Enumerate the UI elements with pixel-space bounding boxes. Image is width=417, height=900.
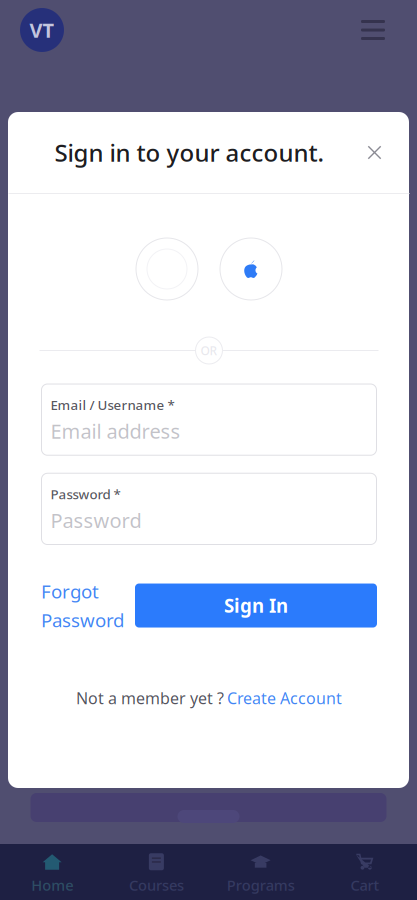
button[interactable]: Sign in with Google (136, 238, 198, 300)
staticText: Programs (227, 875, 295, 895)
staticText: Not a member yet ? (76, 687, 224, 709)
staticText: Email / Username * (50, 396, 174, 414)
button[interactable]: Courses (104, 841, 208, 900)
button[interactable]: Programs (208, 841, 313, 900)
staticText: Email address (50, 418, 180, 444)
button[interactable]: Forgot (41, 576, 127, 634)
staticText: Password (50, 507, 141, 534)
staticText: Password * (50, 485, 120, 503)
staticText: Sign in to your account. (54, 137, 324, 168)
staticText: VT (29, 17, 54, 43)
staticText: OR (200, 342, 217, 358)
staticText: Sign In (224, 593, 288, 618)
button[interactable]: Menu (353, 12, 393, 48)
staticText: Cart (350, 875, 379, 895)
button[interactable]: Create Account (227, 687, 342, 709)
button[interactable]: Home (0, 841, 104, 900)
staticText: Home (31, 875, 73, 895)
staticText: Courses (129, 875, 184, 895)
staticText: Password (41, 607, 124, 632)
button[interactable]: Sign In (135, 583, 377, 627)
button[interactable]: Cart (313, 841, 417, 900)
button[interactable]: Close (358, 136, 390, 168)
staticText: Forgot (41, 579, 99, 603)
staticText: Create Account (227, 687, 342, 709)
button[interactable]: Sign in with Apple (220, 238, 282, 300)
